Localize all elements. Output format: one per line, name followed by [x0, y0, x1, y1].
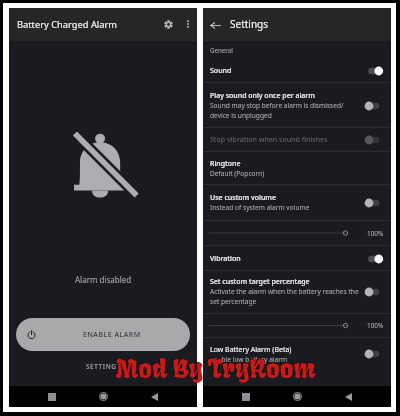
button[interactable]: Recents	[235, 386, 257, 407]
button[interactable]: Home	[92, 386, 114, 407]
staticText: Stop vibration when sound finishes	[210, 135, 328, 145]
button[interactable]: Toggle	[364, 194, 384, 212]
button[interactable]: Recents	[41, 386, 63, 407]
button[interactable]: SETTINGS	[74, 360, 133, 373]
staticText: Sound may stop before alarm is dismissed…	[210, 101, 344, 120]
button[interactable]: Low Battery Alarm (Beta)	[203, 338, 391, 370]
button[interactable]: More options	[177, 13, 198, 34]
staticText: Mod By TryRoom	[114, 351, 315, 384]
button[interactable]: Back	[205, 15, 226, 36]
button[interactable]: Play sound only once per alarm	[203, 83, 391, 128]
staticText: ENABLE ALARM	[83, 330, 141, 340]
staticText: Battery Charged Alarm	[17, 18, 117, 31]
button[interactable]: Home	[286, 386, 308, 407]
button[interactable]: Back	[143, 386, 165, 407]
staticText: SETTINGS	[86, 362, 121, 371]
staticText: Play sound only once per alarm	[210, 91, 315, 101]
staticText: 100%	[367, 229, 384, 238]
button[interactable]: Toggle	[364, 250, 384, 268]
staticText: Settings	[230, 17, 269, 31]
button[interactable]: Toggle	[364, 62, 384, 80]
staticText: Mod By TryRoom	[115, 352, 316, 385]
button[interactable]: ENABLE ALARM	[16, 318, 190, 351]
staticText: Low Battery Alarm (Beta)	[210, 345, 292, 355]
staticText: Default (Popcorn)	[210, 169, 265, 178]
staticText: Vibration	[210, 254, 241, 264]
button[interactable]: Toggle	[364, 97, 384, 115]
button[interactable]: Ringtone	[203, 152, 391, 184]
button[interactable]: Vibration	[203, 246, 391, 271]
button[interactable]: Sound	[203, 60, 391, 82]
staticText: Sound	[210, 66, 232, 76]
staticText: General	[210, 46, 233, 54]
button[interactable]: Toggle	[364, 283, 384, 301]
staticText: 100%	[367, 321, 384, 330]
staticText: Set custom target percentage	[210, 277, 310, 287]
button[interactable]: Toggle	[364, 345, 384, 363]
button[interactable]: Set custom target percentage	[203, 271, 391, 312]
staticText: Activate the alarm when the battery reac…	[210, 287, 359, 306]
staticText: Use custom volume	[210, 193, 276, 203]
button[interactable]: Stop vibration when sound finishes	[203, 128, 391, 151]
staticText: Alarm disabled	[75, 274, 132, 285]
staticText: Instead of system alarm volume	[210, 203, 310, 212]
button[interactable]: Back	[337, 386, 359, 407]
button[interactable]: Use custom volume	[203, 185, 391, 220]
button[interactable]: Settings	[157, 13, 180, 36]
staticText: Ringtone	[210, 159, 241, 169]
staticText: enable low battery alarm	[210, 355, 288, 364]
button[interactable]: Toggle	[364, 131, 384, 149]
